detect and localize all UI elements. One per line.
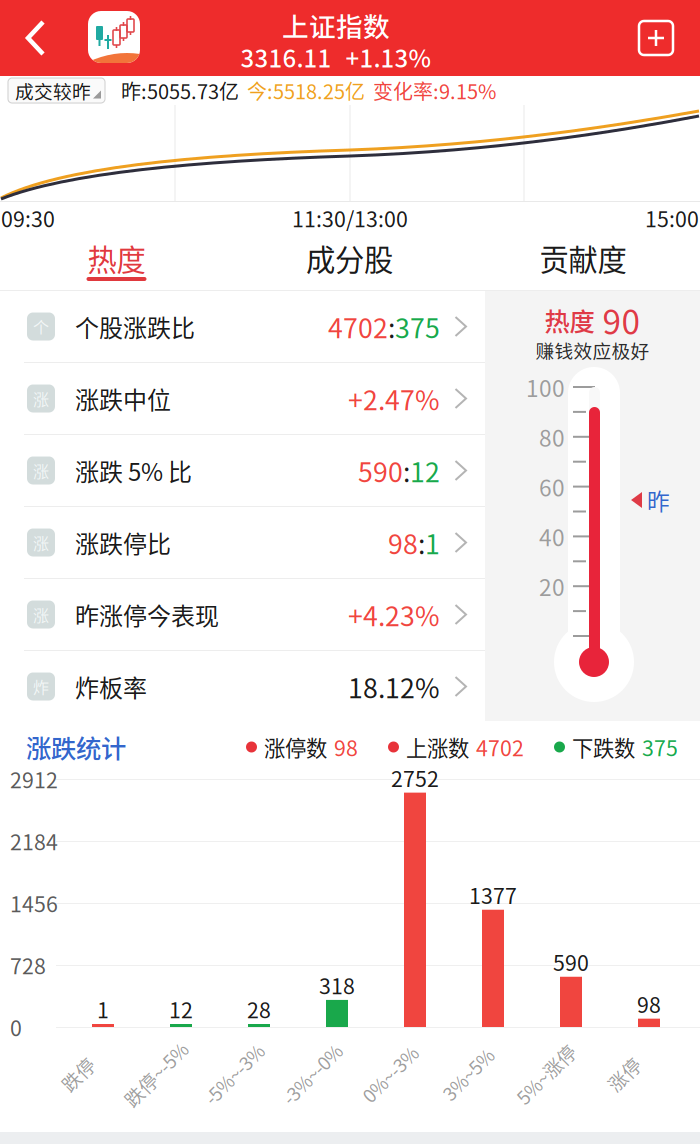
staticText: 11:30/13:00 <box>292 203 408 233</box>
staticText: 375 <box>395 307 440 346</box>
staticText: 40 <box>539 520 565 553</box>
staticText: 3316.11 <box>240 40 331 74</box>
staticText: 590 <box>358 451 403 490</box>
staticText: 1 <box>97 994 109 1024</box>
button[interactable]: 涨 <box>0 579 485 650</box>
staticText: 涨停数 <box>264 732 327 762</box>
staticText: 贡献度 <box>539 237 626 279</box>
staticText: 20 <box>539 570 565 603</box>
staticText: +2.47% <box>348 379 440 418</box>
button[interactable]: 涨 <box>0 363 485 434</box>
staticText: 80 <box>539 420 565 453</box>
staticText: 个 <box>33 315 49 338</box>
button[interactable]: 涨 <box>0 435 485 506</box>
staticText: 5%~涨停 <box>508 1060 583 1087</box>
staticText: 上证指数 <box>282 6 390 44</box>
staticText: : <box>403 451 410 490</box>
staticText: 100 <box>526 371 565 403</box>
staticText: 昨涨停今表现 <box>75 597 219 632</box>
staticText: 成交较昨 <box>15 77 91 104</box>
staticText: 15:00 <box>645 203 699 233</box>
staticText: 1 <box>425 523 440 562</box>
button[interactable]: 个 <box>0 291 485 362</box>
staticText: 728 <box>10 950 46 980</box>
staticText: 60 <box>539 470 565 503</box>
staticText: +4.23% <box>348 595 440 634</box>
staticText: 涨跌停比 <box>75 525 171 560</box>
staticText: 下跌数 <box>572 732 635 762</box>
staticText: -3%~-0% <box>274 1060 350 1087</box>
staticText: 昨:5055.73亿 <box>121 76 239 105</box>
staticText: : <box>388 307 395 346</box>
staticText: 跌停 <box>59 1060 97 1087</box>
staticText: 变化率:9.15% <box>373 76 496 105</box>
staticText: 0 <box>10 1012 22 1042</box>
staticText: 个股涨跌比 <box>75 309 195 344</box>
staticText: 375 <box>642 732 678 762</box>
staticText: 炸板率 <box>75 669 147 704</box>
staticText: 赚钱效应极好 <box>535 336 649 363</box>
staticText: 热度 <box>87 237 145 279</box>
button[interactable]: 成交较昨 <box>0 78 105 103</box>
staticText: 4702 <box>476 732 524 762</box>
staticText: 涨跌中位 <box>75 381 171 416</box>
staticText: 0%~-3% <box>355 1060 425 1087</box>
staticText: : <box>418 523 425 562</box>
button[interactable]: 涨 <box>0 507 485 578</box>
staticText: 上涨数 <box>406 732 469 762</box>
staticText: 3%~5% <box>436 1060 500 1087</box>
button[interactable]: 成分股 <box>233 234 466 291</box>
staticText: 590 <box>553 946 589 977</box>
staticText: 12 <box>169 994 193 1024</box>
staticText: 涨 <box>33 603 49 626</box>
staticText: 12 <box>410 451 440 490</box>
staticText: 318 <box>319 969 355 1000</box>
staticText: 涨 <box>33 459 49 482</box>
staticText: 涨 <box>33 531 49 554</box>
button[interactable]: 贡献度 <box>466 234 700 291</box>
button[interactable]: Add <box>624 0 688 76</box>
staticText: 跌停~-5% <box>115 1060 196 1087</box>
staticText: 98 <box>334 732 358 762</box>
button[interactable]: 热度 <box>0 234 233 291</box>
staticText: 18.12% <box>348 667 440 706</box>
staticText: 1377 <box>469 879 517 910</box>
staticText: 涨跌 5% 比 <box>75 453 192 488</box>
staticText: 90 <box>602 296 640 344</box>
staticText: 涨跌统计 <box>26 729 126 765</box>
staticText: 涨停 <box>605 1060 643 1087</box>
button[interactable]: Back <box>0 0 72 76</box>
staticText: 2752 <box>391 762 439 793</box>
staticText: 成分股 <box>306 237 393 279</box>
staticText: 炸 <box>33 675 49 698</box>
staticText: 涨 <box>33 387 49 410</box>
staticText: 28 <box>247 994 271 1024</box>
staticText: 4702 <box>328 307 388 346</box>
button[interactable]: 炸 <box>0 651 485 722</box>
staticText: 1456 <box>10 888 58 918</box>
staticText: 98 <box>388 523 418 562</box>
staticText: 98 <box>637 988 661 1019</box>
staticText: 2184 <box>10 826 58 856</box>
staticText: +1.13% <box>345 40 431 74</box>
staticText: 热度 <box>544 302 594 338</box>
staticText: 今:5518.25亿 <box>247 76 365 105</box>
staticText: 昨 <box>647 484 670 516</box>
staticText: 2912 <box>10 764 58 794</box>
staticText: -5%~-3% <box>196 1060 272 1087</box>
staticText: 09:30 <box>1 203 55 233</box>
